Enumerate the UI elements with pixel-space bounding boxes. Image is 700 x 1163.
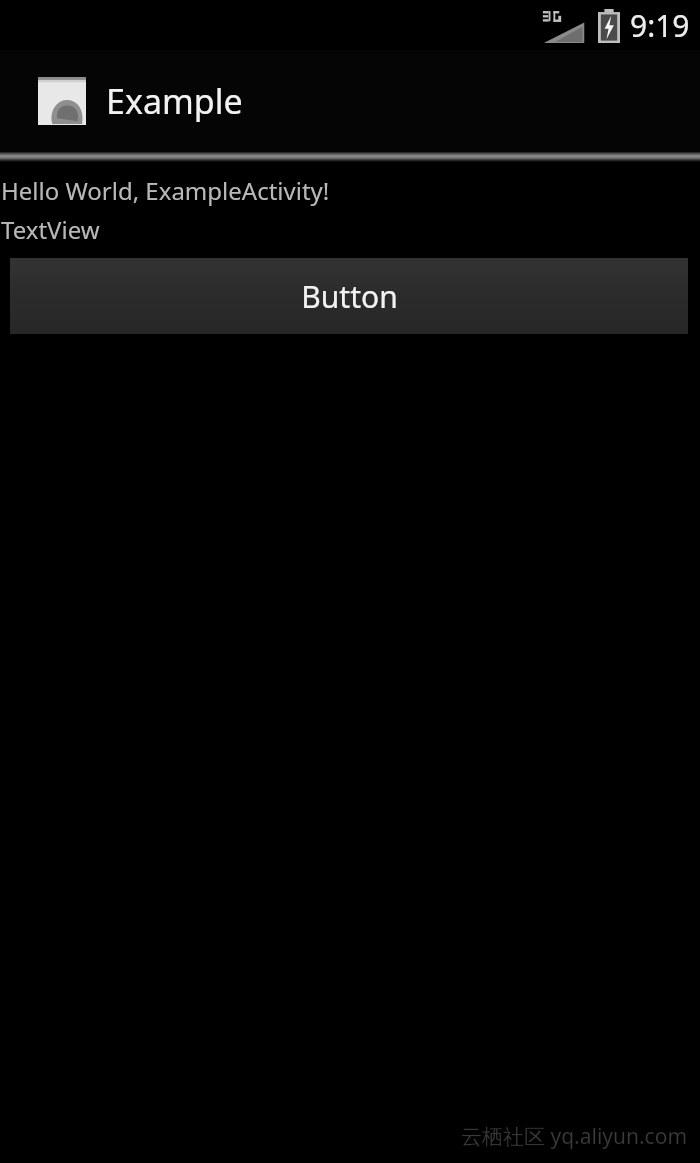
staticText: Hello World, ExampleActivity!	[1, 174, 330, 207]
staticText: TextView	[1, 213, 100, 246]
staticText: Example	[106, 78, 243, 124]
staticText: 9:19	[630, 5, 690, 46]
staticText: 云栖社区 yq.aliyun.com	[461, 1122, 688, 1151]
staticText: Button	[301, 276, 398, 317]
button[interactable]: Button	[10, 258, 688, 334]
